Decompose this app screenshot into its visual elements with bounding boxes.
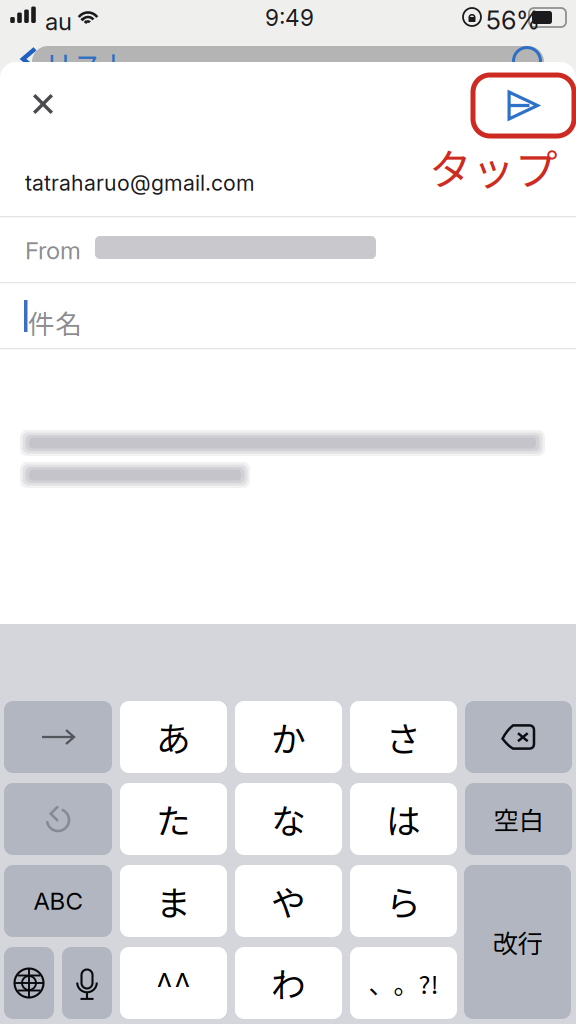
staticText: 、。?!	[368, 965, 438, 1001]
staticText: From	[25, 236, 81, 265]
button[interactable]: や	[235, 865, 342, 937]
button[interactable]: わ	[235, 947, 342, 1019]
staticText: や	[271, 876, 306, 926]
button[interactable]: 空白	[465, 783, 572, 855]
button[interactable]: Send	[473, 75, 574, 136]
staticText: ま	[156, 876, 191, 926]
staticText: わ	[271, 958, 306, 1008]
button[interactable]	[4, 783, 112, 855]
button[interactable]: ^^	[120, 947, 227, 1019]
button[interactable]: 、。?!	[350, 947, 457, 1019]
button[interactable]: ABC	[4, 865, 112, 937]
button[interactable]: ら	[350, 865, 457, 937]
button[interactable]: Close	[12, 73, 74, 135]
staticText: au	[45, 7, 72, 36]
button[interactable]: さ	[350, 701, 457, 773]
staticText: か	[271, 712, 306, 762]
staticText: 件名	[28, 303, 82, 342]
button[interactable]	[62, 947, 112, 1019]
staticText: あ	[156, 712, 191, 762]
button[interactable]	[4, 947, 54, 1019]
staticText: ABC	[33, 886, 82, 915]
button[interactable]: か	[235, 701, 342, 773]
staticText: は	[386, 794, 421, 844]
staticText: タップ	[429, 136, 558, 198]
button[interactable]: は	[350, 783, 457, 855]
staticText: 改行	[492, 924, 542, 960]
staticText: た	[156, 794, 191, 844]
button[interactable]: あ	[120, 701, 227, 773]
button[interactable]: ま	[120, 865, 227, 937]
staticText: ^^	[155, 960, 191, 1006]
button[interactable]: た	[120, 783, 227, 855]
staticText: 空白	[493, 801, 543, 837]
button[interactable]: な	[235, 783, 342, 855]
staticText: tatraharuo@gmail.com	[25, 170, 255, 196]
staticText: な	[271, 794, 306, 844]
staticText: ら	[386, 876, 421, 926]
staticText: 56%	[486, 5, 540, 36]
button[interactable]	[4, 701, 112, 773]
button[interactable]	[465, 701, 572, 773]
staticText: リスト	[44, 43, 131, 85]
button[interactable]: 改行	[464, 865, 571, 1019]
staticText: 9:49	[265, 4, 314, 31]
staticText: さ	[386, 712, 421, 762]
